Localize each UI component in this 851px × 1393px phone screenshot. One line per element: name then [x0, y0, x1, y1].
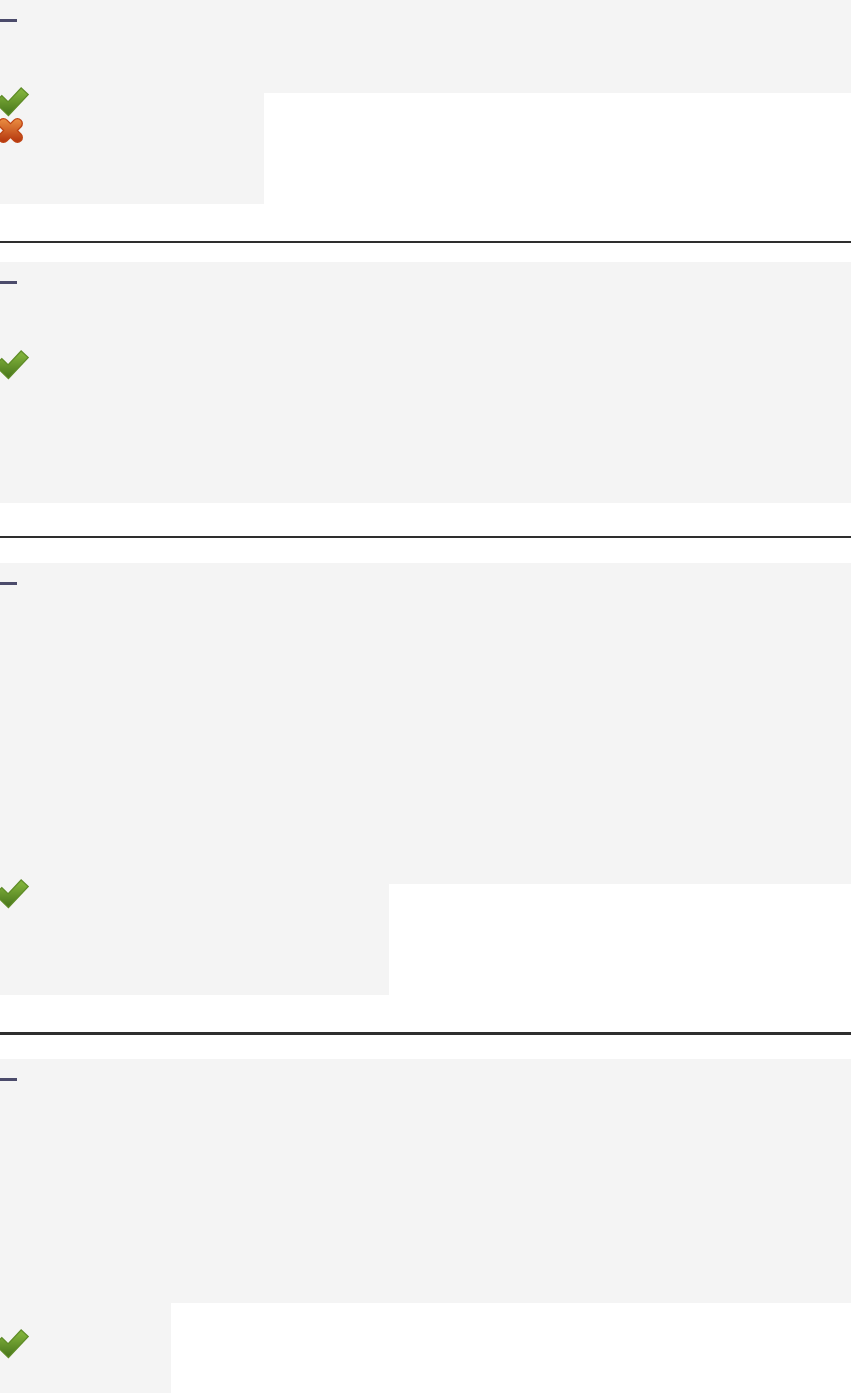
button[interactable]: Correct	[0, 92, 23, 113]
button[interactable]	[0, 1303, 171, 1393]
button[interactable]	[0, 93, 264, 204]
button[interactable]: Correct	[0, 1334, 23, 1355]
button[interactable]: Correct	[0, 355, 23, 376]
button[interactable]	[0, 262, 851, 503]
button[interactable]	[0, 0, 851, 93]
button[interactable]: Incorrect	[0, 120, 21, 141]
button[interactable]	[0, 884, 389, 995]
button[interactable]: Correct	[0, 884, 23, 905]
